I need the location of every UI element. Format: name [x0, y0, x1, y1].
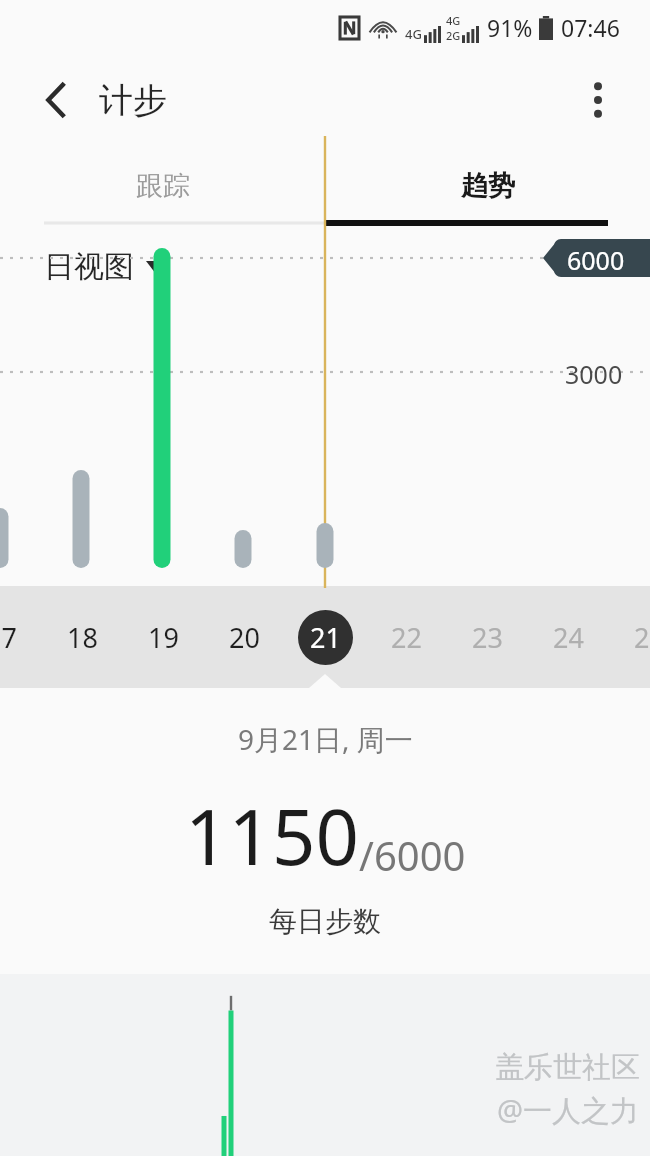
staticText: 4G — [405, 25, 422, 43]
button[interactable]: 22 — [366, 597, 446, 677]
staticText: 18 — [67, 619, 98, 656]
staticText: 计步 — [99, 79, 167, 122]
staticText: 1150 — [185, 784, 359, 888]
staticText: 日视图 — [44, 248, 134, 286]
staticText: @一人之力 — [497, 1090, 640, 1130]
staticText: 19 — [148, 619, 179, 656]
staticText: 6000 — [567, 243, 625, 277]
staticText: 4G — [446, 13, 461, 28]
staticText: 17 — [0, 619, 17, 656]
staticText: 2G — [446, 28, 461, 43]
button[interactable]: Back — [28, 72, 84, 128]
staticText: 9月21日, 周一 — [238, 720, 413, 758]
button[interactable]: 趋势 — [325, 146, 650, 226]
staticText: 盖乐世社区 — [495, 1049, 640, 1086]
staticText: 24 — [553, 619, 584, 656]
button[interactable]: 17 — [0, 597, 41, 677]
button[interactable]: 20 — [204, 597, 284, 677]
staticText: 07:46 — [561, 12, 620, 43]
button[interactable]: More options — [570, 72, 626, 128]
staticText: /6000 — [359, 828, 466, 882]
button[interactable]: 18 — [42, 597, 122, 677]
staticText: 22 — [391, 619, 422, 656]
button[interactable]: 25 — [609, 597, 650, 677]
button[interactable]: 21 — [285, 597, 365, 677]
staticText: 25 — [634, 619, 650, 656]
staticText: 每日步数 — [269, 904, 381, 939]
staticText: 21 — [310, 619, 341, 656]
button[interactable]: 19 — [123, 597, 203, 677]
staticText: 3000 — [565, 357, 623, 391]
button[interactable]: 日视图 — [44, 248, 166, 286]
staticText: 91% — [487, 12, 533, 43]
staticText: 跟踪 — [136, 169, 190, 203]
staticText: 趋势 — [461, 169, 515, 203]
button[interactable]: 24 — [528, 597, 608, 677]
button[interactable]: 跟踪 — [0, 146, 325, 226]
button[interactable]: 23 — [447, 597, 527, 677]
staticText: 23 — [472, 619, 503, 656]
staticText: 20 — [229, 619, 260, 656]
